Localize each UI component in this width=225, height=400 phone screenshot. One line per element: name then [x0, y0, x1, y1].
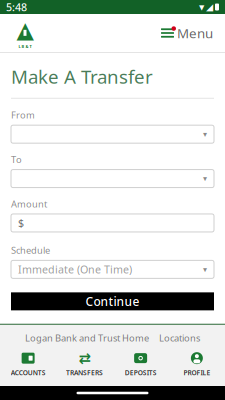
staticText: Locations: [159, 332, 200, 344]
button[interactable]: DEPOSITS: [112, 348, 169, 380]
staticText: Amount: [11, 198, 47, 210]
staticText: L B & T: [18, 44, 31, 49]
staticText: Make A Transfer: [11, 64, 153, 89]
staticText: ▾: [203, 130, 207, 139]
button[interactable]: Menu: [159, 18, 215, 48]
button[interactable]: ⇄: [56, 348, 112, 380]
staticText: DEPOSITS: [125, 368, 157, 377]
staticText: 5:48: [6, 0, 27, 14]
staticText: ◢: [206, 2, 213, 12]
staticText: $: [18, 216, 24, 230]
staticText: Continue: [85, 293, 139, 309]
staticText: Menu: [177, 24, 213, 42]
button[interactable]: PROFILE: [169, 348, 225, 380]
staticText: Immediate (One Time): [18, 262, 132, 276]
button[interactable]: Continue: [11, 292, 214, 310]
button[interactable]: Immediate (One Time): [11, 260, 214, 278]
button[interactable]: Amount: [11, 214, 214, 232]
staticText: To: [11, 153, 22, 166]
button[interactable]: Select account: [11, 125, 214, 143]
staticText: TRANSFERS: [66, 368, 103, 377]
staticText: ▾: [199, 1, 204, 13]
staticText: ACCOUNTS: [11, 368, 46, 377]
staticText: Logan Bank and Trust Home: [25, 332, 149, 344]
staticText: Schedule: [11, 244, 50, 256]
staticText: ▾: [203, 265, 207, 274]
staticText: ▾: [203, 174, 207, 183]
button[interactable]: ACCOUNTS: [0, 348, 56, 380]
staticText: PROFILE: [183, 368, 210, 377]
button[interactable]: Logan Bank and Trust Home: [25, 332, 149, 344]
button[interactable]: Locations: [159, 332, 200, 344]
staticText: ▲: [16, 17, 33, 43]
staticText: From: [11, 109, 35, 121]
staticText: ⇄: [78, 350, 90, 366]
button[interactable]: Select account: [11, 170, 214, 188]
